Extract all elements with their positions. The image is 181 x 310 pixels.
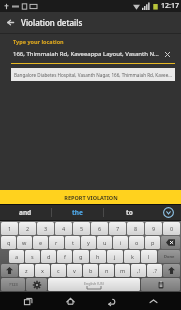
button[interactable]: Backspace [161, 236, 180, 249]
button[interactable]: Clear text [161, 48, 173, 60]
button[interactable]: q [1, 236, 16, 249]
button[interactable]: 0 [163, 222, 180, 235]
staticText: g [79, 253, 83, 260]
button[interactable]: k [124, 250, 140, 263]
button[interactable]: m [115, 264, 130, 277]
staticText: n [105, 267, 109, 274]
button[interactable]: Hide keyboard [140, 292, 166, 310]
staticText: to [126, 208, 133, 217]
button[interactable]: More suggestions [155, 204, 181, 221]
staticText: Done [164, 254, 175, 259]
button[interactable]: Shift [1, 264, 18, 277]
staticText: h [96, 253, 100, 260]
staticText: 166, Thimmaiah Rd, Kaveeappa Layout, Vas… [13, 50, 161, 58]
button[interactable]: o [129, 236, 144, 249]
button[interactable]: REPORT VIOLATION [0, 190, 181, 204]
button[interactable]: 6 [91, 222, 108, 235]
button[interactable]: 5 [73, 222, 90, 235]
button[interactable]: Shift [163, 264, 180, 277]
button[interactable]: y [81, 236, 96, 249]
staticText: d [47, 253, 51, 260]
staticText: j [114, 253, 116, 260]
button[interactable]: Symbols [1, 278, 25, 291]
button[interactable]: ,! [131, 264, 146, 277]
staticText: q [7, 239, 11, 246]
staticText: 12:17 [161, 1, 179, 11]
staticText: k [131, 253, 134, 260]
button[interactable]: Space [48, 278, 140, 291]
staticText: 9 [152, 225, 156, 232]
button[interactable]: r [49, 236, 64, 249]
button[interactable]: w [17, 236, 32, 249]
staticText: 1 [8, 225, 12, 232]
button[interactable]: 4 [55, 222, 72, 235]
button[interactable]: u [97, 236, 112, 249]
staticText: ,! [137, 267, 140, 274]
button[interactable]: v [67, 264, 82, 277]
staticText: REPORT VIOLATION [64, 194, 118, 201]
staticText: Type your location [13, 38, 64, 45]
button[interactable]: .? [147, 264, 162, 277]
staticText: 2 [26, 225, 30, 232]
staticText: o [135, 239, 139, 246]
button[interactable]: Recent apps [15, 292, 41, 310]
staticText: 6 [98, 225, 102, 232]
staticText: Bangalore Diabetes Hospital, Vasanth Nag… [14, 72, 172, 78]
button[interactable]: z [19, 264, 34, 277]
button[interactable]: Done [158, 250, 180, 263]
staticText: t [72, 239, 74, 246]
staticText: f [64, 253, 66, 260]
staticText: 8 [134, 225, 138, 232]
button[interactable]: g [73, 250, 89, 263]
button[interactable]: 9 [145, 222, 162, 235]
staticText: 4 [62, 225, 66, 232]
button[interactable]: 2 [19, 222, 36, 235]
button[interactable]: i [113, 236, 128, 249]
button[interactable]: f [57, 250, 72, 263]
button[interactable]: j [107, 250, 123, 263]
button[interactable]: 8 [127, 222, 144, 235]
button[interactable]: c [51, 264, 66, 277]
staticText: u [103, 239, 107, 246]
button[interactable]: b [83, 264, 98, 277]
button[interactable]: Home [57, 292, 83, 310]
staticText: m [120, 267, 126, 274]
staticText: s [31, 253, 34, 260]
button[interactable]: 1 [1, 222, 18, 235]
button[interactable]: Bangalore Diabetes Hospital, Vasanth Nag… [11, 68, 175, 81]
staticText: .? [153, 267, 157, 274]
staticText: the [72, 208, 83, 217]
button[interactable]: to [104, 204, 155, 221]
staticText: e [39, 239, 43, 246]
staticText: and [19, 208, 32, 217]
button[interactable]: e [33, 236, 48, 249]
button[interactable]: Back [98, 292, 124, 310]
staticText: a [15, 253, 19, 260]
staticText: y [87, 239, 90, 246]
staticText: r [55, 239, 58, 246]
button[interactable]: and [0, 204, 51, 221]
button[interactable]: l [141, 250, 157, 263]
staticText: x [41, 267, 44, 274]
staticText: i [120, 239, 122, 246]
button[interactable]: Input settings [26, 278, 47, 291]
button[interactable]: 3 [37, 222, 54, 235]
button[interactable]: p [145, 236, 160, 249]
button[interactable]: h [90, 250, 106, 263]
button[interactable]: the [52, 204, 103, 221]
button[interactable]: n [99, 264, 114, 277]
staticText: z [25, 267, 28, 274]
staticText: c [57, 267, 60, 274]
button[interactable]: a [9, 250, 24, 263]
button[interactable]: 7 [109, 222, 126, 235]
button[interactable]: Navigate up [0, 12, 21, 33]
staticText: l [148, 253, 150, 260]
button[interactable]: t [65, 236, 80, 249]
button[interactable]: x [35, 264, 50, 277]
button[interactable]: d [41, 250, 56, 263]
button[interactable]: s [25, 250, 40, 263]
staticText: 5 [80, 225, 84, 232]
staticText: p [151, 239, 155, 246]
staticText: 7 [116, 225, 120, 232]
button[interactable]: Clipboard [141, 278, 180, 291]
